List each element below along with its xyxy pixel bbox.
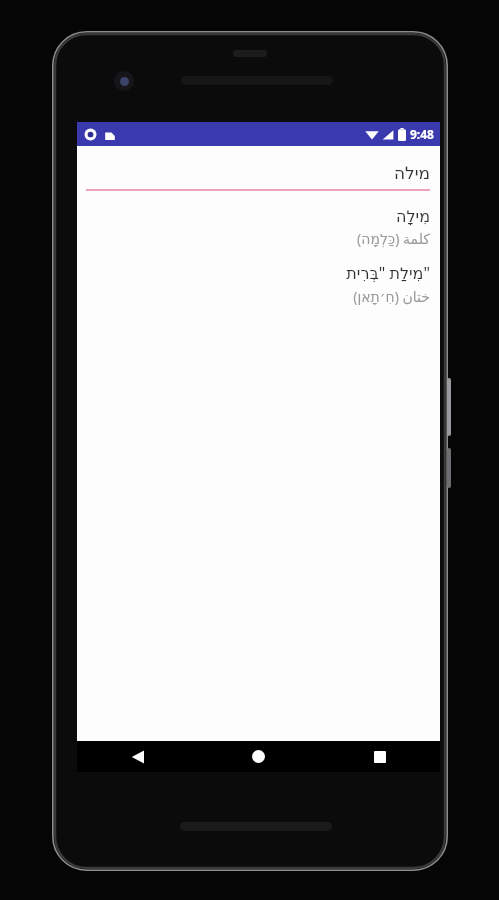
button[interactable]: מִילַת "בְּרִית" [77, 262, 440, 306]
button[interactable]: מילה [77, 146, 440, 191]
button[interactable]: Recent apps [319, 741, 440, 772]
staticText: מילה [86, 163, 430, 183]
staticText: ختان (חִ׳תָאן) [87, 287, 430, 306]
staticText: מִילַת "בְּרִית" [87, 262, 430, 284]
button[interactable]: Home [198, 741, 319, 772]
button[interactable]: Back [77, 741, 198, 772]
staticText: 9:48 [410, 126, 434, 142]
button[interactable]: מִילָה [77, 207, 440, 248]
staticText: מִילָה [87, 207, 430, 226]
staticText: كلمة (כַּלְמָה) [87, 229, 430, 248]
